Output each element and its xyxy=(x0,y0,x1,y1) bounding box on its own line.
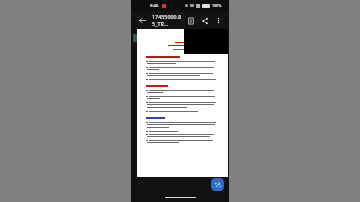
button[interactable]: Edit with AI xyxy=(211,178,224,191)
button[interactable]: Share xyxy=(198,14,211,27)
button[interactable] xyxy=(137,29,228,177)
button[interactable]: More options xyxy=(212,14,224,26)
staticText: 9:46 xyxy=(150,3,159,9)
staticText: 17455000.85_TR… xyxy=(152,13,184,27)
button[interactable]: Print xyxy=(184,14,197,27)
staticText: 100% xyxy=(212,3,222,8)
button[interactable]: 17455000.85_TR… xyxy=(152,13,184,27)
button[interactable]: Back xyxy=(136,14,149,27)
